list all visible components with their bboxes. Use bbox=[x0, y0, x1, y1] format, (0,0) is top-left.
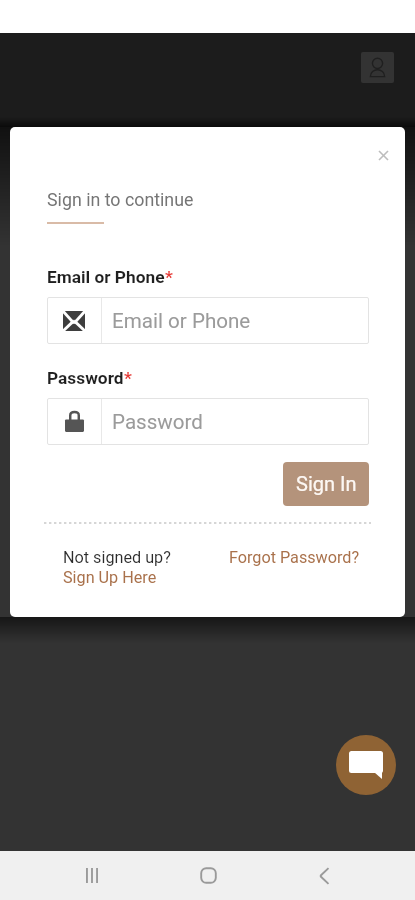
button[interactable]: Forgot Password? bbox=[229, 548, 360, 567]
button[interactable]: Chat bbox=[336, 735, 396, 795]
button[interactable]: Email or Phone bbox=[47, 297, 369, 344]
button[interactable]: Recents bbox=[68, 851, 116, 900]
staticText: * bbox=[165, 267, 173, 287]
button[interactable]: Home bbox=[184, 851, 232, 900]
button[interactable]: Sign In bbox=[283, 462, 369, 506]
staticText: Sign in to continue bbox=[47, 189, 194, 210]
staticText: * bbox=[124, 368, 132, 388]
staticText: Email or Phone bbox=[47, 267, 165, 287]
button[interactable]: Close bbox=[368, 140, 398, 170]
staticText: Email or Phone bbox=[112, 309, 251, 333]
button[interactable]: Password bbox=[47, 398, 369, 445]
staticText: Not signed up? bbox=[63, 548, 171, 567]
button[interactable]: Back bbox=[300, 851, 348, 900]
button[interactable]: Account bbox=[361, 52, 394, 83]
button[interactable]: Sign Up Here bbox=[63, 568, 157, 587]
staticText: Sign In bbox=[296, 472, 357, 495]
staticText: Password bbox=[47, 368, 124, 388]
staticText: Password bbox=[112, 410, 203, 434]
